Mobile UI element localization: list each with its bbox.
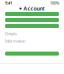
button[interactable]	[5, 24, 59, 28]
staticText: Details	[5, 31, 17, 36]
button[interactable]	[5, 12, 59, 16]
staticText: 100%	[50, 0, 59, 6]
staticText: Information	[5, 38, 25, 44]
staticText: 9:41	[5, 0, 12, 6]
button[interactable]	[0, 52, 64, 56]
button[interactable]	[5, 18, 59, 22]
staticText: Account	[23, 5, 44, 12]
